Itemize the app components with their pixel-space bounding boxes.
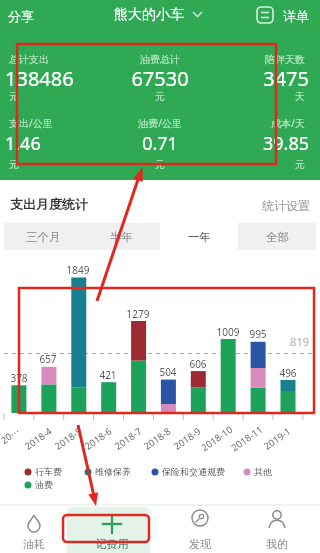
staticText: 2018-7 [112, 424, 145, 453]
staticText: 606 [173, 357, 223, 371]
staticText: 421 [83, 368, 133, 382]
staticText: 记费用 [82, 537, 142, 551]
staticText: 2018-10 [198, 423, 235, 454]
staticText: 发现 [170, 537, 230, 551]
staticText: 1279 [113, 307, 163, 321]
staticText: 陪伴天数 [185, 53, 305, 66]
button[interactable]: 详单 [250, 0, 320, 30]
staticText: 138486 [5, 65, 125, 92]
staticText: 819 [283, 334, 309, 349]
staticText: 统计设置 [240, 198, 310, 213]
staticText: 2018-8 [141, 424, 174, 453]
staticText: 2018-6 [82, 424, 115, 453]
button[interactable]: 一年 [160, 223, 238, 250]
staticText: 油费总计 [100, 53, 220, 66]
button[interactable]: 全部 [238, 223, 316, 250]
staticText: 2018-9 [171, 424, 204, 453]
button[interactable]: 统计设置 [240, 198, 316, 214]
staticText: 支出/公里 [9, 116, 129, 130]
staticText: 天 [185, 90, 305, 103]
staticText: 39.85 [189, 131, 309, 156]
staticText: 378 [0, 371, 44, 385]
staticText: 一年 [188, 230, 211, 244]
staticText: 元 [185, 158, 305, 171]
button[interactable]: 分享 [0, 0, 60, 30]
staticText: 我的 [247, 537, 307, 551]
button[interactable]: 发现 [170, 507, 230, 553]
staticText: 元 [9, 158, 129, 171]
staticText: 行车费 [35, 466, 62, 477]
staticText: 1009 [203, 325, 253, 339]
staticText: 油费 [35, 479, 53, 490]
button[interactable]: 半年 [82, 223, 160, 250]
staticText: 保险和交通规费 [162, 466, 225, 477]
staticText: 熊大的小车 [114, 6, 184, 24]
staticText: 维修保养 [95, 466, 131, 477]
staticText: 分享 [8, 8, 34, 24]
staticText: 20⋯ [0, 424, 23, 447]
staticText: 657 [23, 352, 73, 366]
staticText: 2019-1 [261, 424, 294, 453]
staticText: 支出月度统计 [10, 196, 88, 212]
staticText: 2018-11 [228, 423, 265, 454]
staticText: 0.71 [100, 131, 220, 156]
staticText: 详单 [283, 8, 309, 24]
staticText: 2018-5 [52, 424, 85, 453]
staticText: 半年 [110, 230, 133, 244]
staticText: 496 [263, 366, 313, 380]
staticText: 成本/天 [185, 116, 305, 130]
staticText: 995 [233, 327, 283, 341]
button[interactable]: 三个月 [4, 223, 82, 250]
button[interactable]: 记费用 [82, 507, 142, 553]
staticText: 总计支出 [9, 53, 129, 66]
staticText: 油耗 [4, 537, 64, 551]
staticText: 1849 [53, 263, 103, 277]
button[interactable]: 我的 [247, 507, 307, 553]
staticText: 504 [143, 365, 193, 379]
staticText: 元 [9, 90, 129, 103]
button[interactable]: 熊大的小车 [105, 0, 215, 30]
staticText: 3475 [189, 65, 309, 92]
staticText: 1.46 [5, 131, 125, 156]
staticText: 元 [100, 158, 220, 171]
staticText: 三个月 [26, 230, 61, 244]
button[interactable]: 油耗 [4, 507, 64, 553]
staticText: 全部 [266, 230, 289, 244]
staticText: 2018-4 [22, 424, 55, 453]
staticText: 67530 [100, 65, 220, 92]
staticText: 元 [100, 90, 220, 103]
staticText: 油费/公里 [100, 116, 220, 130]
staticText: 其他 [254, 466, 272, 477]
button[interactable] [67, 507, 150, 553]
